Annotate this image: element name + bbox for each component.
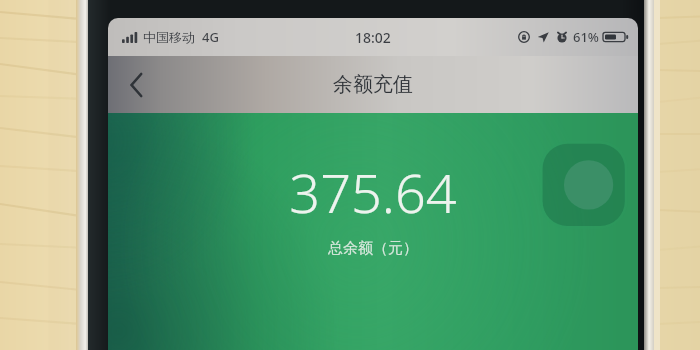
staticText: 中国移动: [143, 29, 195, 45]
staticText: 4G: [202, 28, 219, 46]
staticText: 375.64: [289, 155, 457, 229]
staticText: 总余额（元）: [328, 239, 418, 258]
staticText: 余额充值: [333, 72, 413, 97]
staticText: 18:02: [355, 28, 391, 47]
button[interactable]: Back: [108, 56, 164, 113]
staticText: 61%: [573, 28, 599, 46]
